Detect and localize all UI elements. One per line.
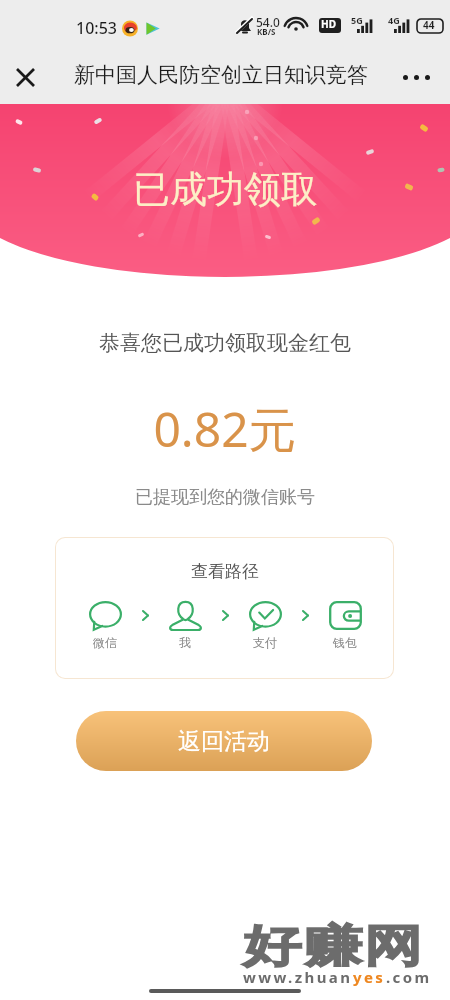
- staticText: 0.82元: [0, 396, 450, 462]
- staticText: 5G: [351, 14, 363, 26]
- staticText: 微信: [93, 635, 117, 650]
- button[interactable]: 返回活动: [76, 711, 372, 771]
- staticText: 好赚网: [243, 919, 425, 974]
- staticText: 恭喜您已成功领取现金红包: [0, 330, 450, 356]
- staticText: .com: [386, 967, 432, 987]
- staticText: HD: [321, 17, 336, 31]
- staticText: 查看路径: [191, 561, 259, 582]
- staticText: 我: [179, 635, 191, 650]
- staticText: 44: [423, 18, 435, 32]
- staticText: 支付: [253, 635, 277, 650]
- staticText: www.zhuan: [243, 967, 353, 987]
- staticText: 54.0: [256, 14, 280, 30]
- staticText: 钱包: [333, 635, 357, 650]
- staticText: 返回活动: [178, 727, 270, 756]
- staticText: 10:53: [76, 17, 117, 39]
- staticText: 已成功领取: [133, 166, 318, 213]
- staticText: KB/S: [257, 26, 276, 37]
- staticText: 4G: [388, 14, 400, 26]
- button[interactable]: More options: [390, 50, 442, 104]
- staticText: 已提现到您的微信账号: [0, 486, 450, 509]
- button[interactable]: Close: [3, 50, 47, 104]
- button[interactable]: 查看路径: [56, 538, 393, 678]
- staticText: yes: [353, 967, 386, 987]
- staticText: 新中国人民防空创立日知识竞答: [74, 62, 368, 88]
